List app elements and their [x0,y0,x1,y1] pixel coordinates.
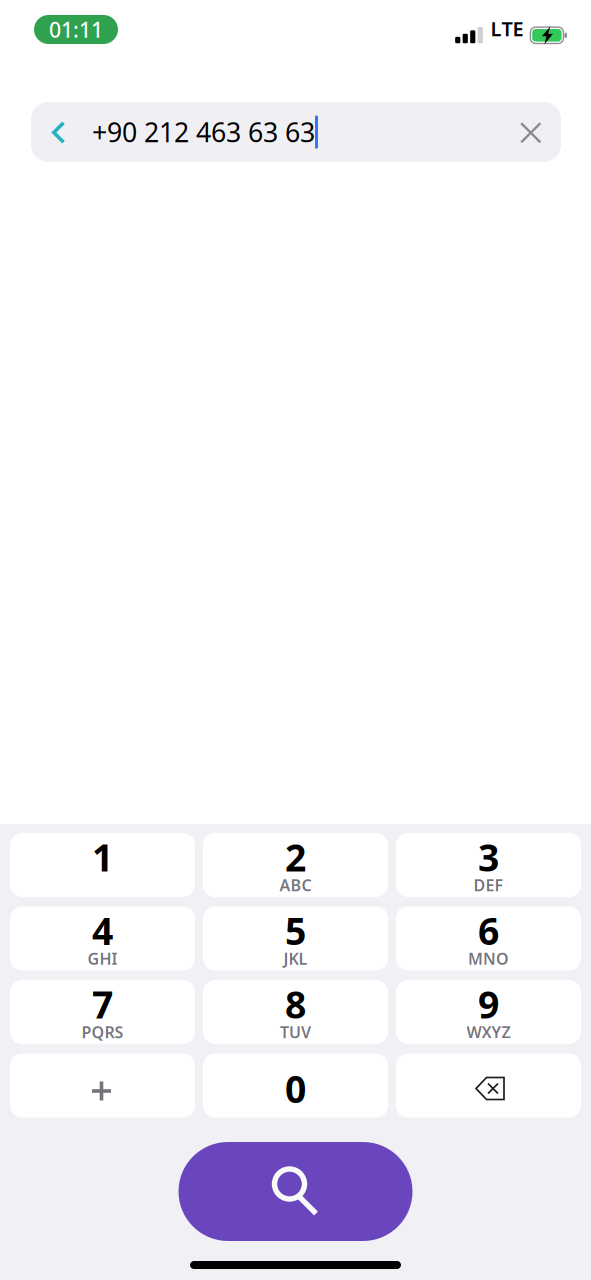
staticText: +90 212 463 63 63 [92,114,315,150]
button[interactable]: 6 [396,906,581,970]
staticText: WXYZ [466,1021,510,1043]
button[interactable]: 7 [10,980,195,1044]
staticText: 6 [478,906,499,955]
button[interactable]: 9 [396,980,581,1044]
staticText: 5 [285,906,306,955]
staticText: ABC [279,874,311,896]
staticText: 7 [92,979,113,1029]
button[interactable]: 1 [10,833,195,897]
staticText: DEF [473,874,503,896]
button[interactable]: Clear [495,102,561,162]
staticText: TUV [280,1021,311,1043]
staticText: 8 [285,979,306,1029]
button[interactable]: Delete [396,1053,581,1117]
staticText: 2 [285,832,306,882]
staticText: 9 [478,979,499,1029]
button[interactable]: 4 [10,906,195,970]
button[interactable]: Search [178,1142,412,1241]
staticText: 0 [285,1064,306,1113]
staticText: LTE [490,15,523,42]
staticText: PQRS [81,1021,123,1043]
button[interactable]: Back [31,102,79,162]
button[interactable]: 5 [203,906,388,970]
button[interactable]: Plus [10,1053,195,1117]
button[interactable]: 3 [396,833,581,897]
button[interactable]: 2 [203,833,388,897]
staticText: 4 [92,906,113,955]
staticText: 1 [92,832,113,882]
button[interactable]: 8 [203,980,388,1044]
staticText: 01:11 [49,15,103,44]
button[interactable]: 0 [203,1053,388,1117]
staticText: MNO [468,948,509,969]
staticText: GHI [87,948,117,969]
staticText: JKL [283,948,307,969]
staticText: 3 [478,832,499,882]
